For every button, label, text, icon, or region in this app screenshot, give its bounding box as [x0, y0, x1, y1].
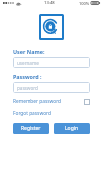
staticText: Login [65, 125, 79, 132]
staticText: Password : [13, 73, 42, 80]
staticText: 13:48 [44, 0, 55, 6]
staticText: username [17, 60, 39, 66]
staticText: 100% [79, 1, 90, 6]
button[interactable]: Remember password [13, 98, 90, 105]
staticText: User Name: [13, 48, 45, 55]
button[interactable]: username [13, 57, 90, 68]
button[interactable]: Forgot password [13, 110, 51, 117]
button[interactable]: password [13, 82, 90, 93]
button[interactable]: Register [13, 123, 49, 134]
staticText: Forgot password [13, 110, 51, 117]
staticText: Remember password [13, 98, 61, 105]
other: App logo [39, 14, 64, 40]
button[interactable]: Login [54, 123, 90, 134]
staticText: password [17, 85, 38, 91]
staticText: Register [21, 125, 41, 132]
